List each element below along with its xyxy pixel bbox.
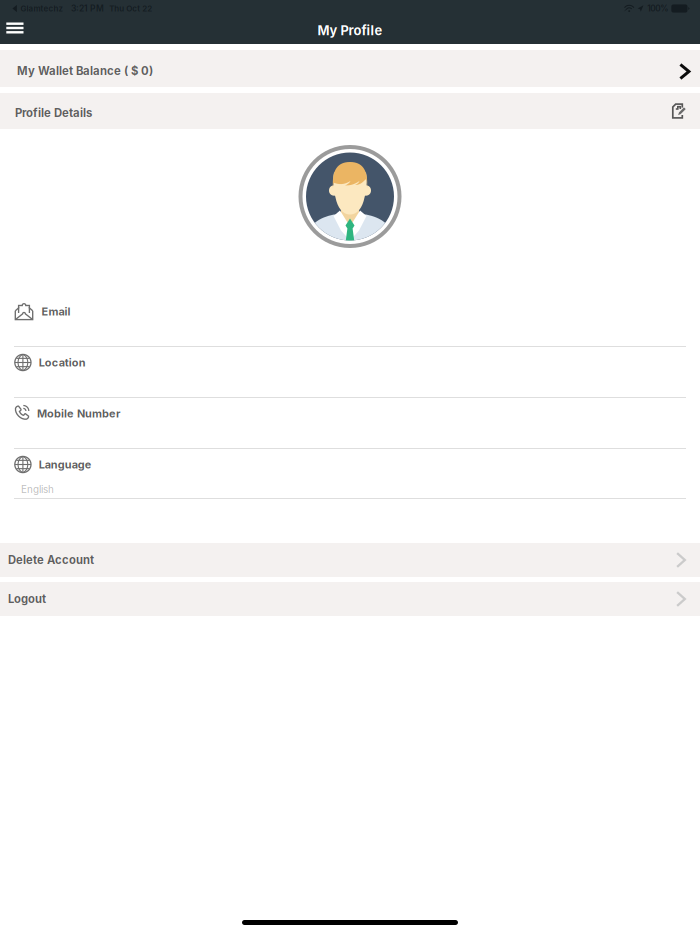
staticText: Glamtechz: [20, 4, 63, 13]
staticText: My Wallet Balance ( $ 0): [17, 64, 153, 78]
staticText: English: [21, 483, 54, 495]
staticText: Thu Oct 22: [109, 4, 152, 13]
staticText: My Profile: [317, 23, 382, 38]
button[interactable]: Menu: [0, 17, 37, 44]
staticText: Delete Account: [8, 553, 94, 567]
button[interactable]: Mobile Number: [0, 398, 700, 449]
button[interactable]: Logout: [0, 582, 700, 616]
button[interactable]: My Wallet Balance ( $ 0): [0, 50, 700, 87]
button[interactable]: Language: [0, 449, 700, 499]
staticText: Profile Details: [15, 106, 92, 120]
button[interactable]: Location: [0, 347, 700, 398]
staticText: Mobile Number: [37, 407, 120, 420]
staticText: 3:21 PM: [71, 3, 104, 14]
staticText: Logout: [8, 592, 46, 606]
staticText: Location: [39, 356, 86, 369]
staticText: Language: [39, 458, 92, 471]
staticText: Email: [41, 305, 70, 318]
button[interactable]: Email: [0, 296, 700, 347]
button[interactable]: Profile Details: [0, 93, 700, 129]
staticText: 100%: [647, 3, 668, 13]
button[interactable]: Delete Account: [0, 543, 700, 577]
